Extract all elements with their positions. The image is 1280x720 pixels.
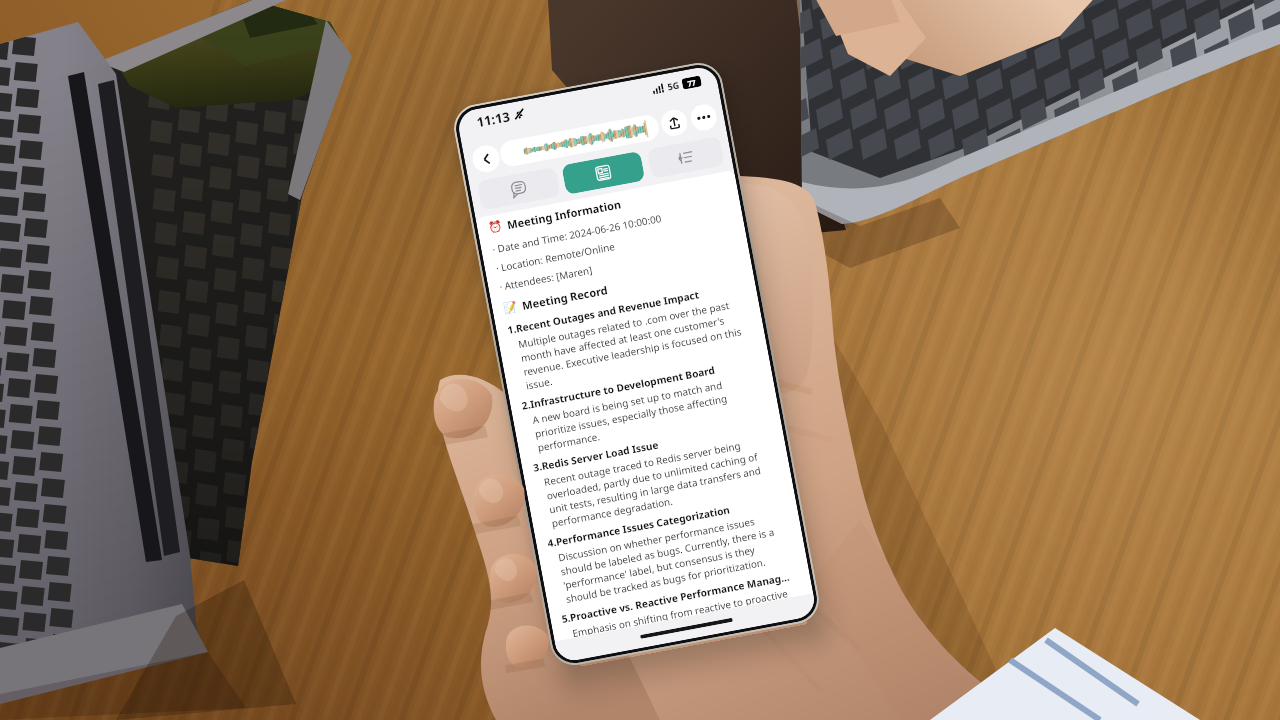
staticText: 2.Infrastructure to Development Board — [520, 363, 717, 413]
staticText: ⏰ — [487, 219, 503, 235]
staticText: 11:13 — [475, 107, 512, 131]
staticText: 4.Performance Issues Categorization — [546, 502, 732, 550]
staticText: A new board is being set up to match and… — [531, 371, 763, 454]
staticText: · Date and Time: 2024-06-26 10:00:00 — [491, 211, 663, 255]
staticText: Meeting Information — [506, 196, 623, 232]
staticText: 5.Proactive vs. Reactive Performance Man… — [560, 569, 795, 626]
staticText: Recent outage traced to Redis server bei… — [543, 433, 777, 530]
staticText: · Attendees: [Maren] — [498, 262, 594, 293]
button[interactable]: Transcript — [477, 167, 561, 211]
staticText: · Location: Remote/Online — [495, 239, 616, 274]
button[interactable]: More options — [689, 102, 719, 132]
staticText: Emphasis on shifting from reactive to pr… — [571, 586, 789, 638]
staticText: Discussion on whether performance issues… — [557, 509, 791, 606]
staticText: 3.Redis Server Load Issue — [532, 437, 660, 475]
staticText: Multiple outages related to .com over th… — [517, 296, 751, 393]
staticText: 77 — [686, 77, 697, 89]
button[interactable]: Summary — [561, 151, 645, 195]
staticText: 1.Recent Outages and Revenue Impact — [506, 287, 700, 337]
staticText: 5G — [666, 78, 680, 92]
button[interactable]: Outline — [647, 136, 725, 179]
staticText: 📝 — [502, 300, 519, 315]
button[interactable]: Back — [470, 143, 502, 174]
button[interactable]: Share — [659, 108, 689, 138]
staticText: Meeting Record — [521, 282, 609, 313]
